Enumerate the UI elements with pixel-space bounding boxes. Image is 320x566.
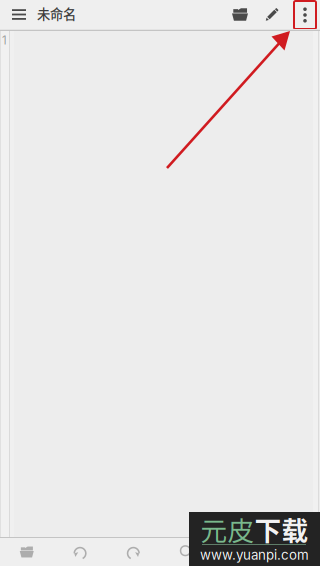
button[interactable]: Open file: [226, 0, 254, 29]
button[interactable]: Files: [0, 538, 53, 566]
staticText: 1: [2, 34, 7, 47]
button[interactable]: More options: [294, 1, 316, 29]
button[interactable]: Edit: [258, 0, 286, 29]
button[interactable]: Menu: [6, 0, 32, 29]
staticText: 下载: [254, 510, 308, 548]
button[interactable]: Redo: [107, 538, 160, 566]
button[interactable]: Search: [160, 538, 213, 566]
button[interactable]: Undo: [53, 538, 107, 566]
staticText: www.yuanpi.com: [200, 547, 309, 563]
button[interactable]: Keyboard: [213, 538, 267, 566]
staticText: 未命名: [37, 4, 76, 23]
staticText: 元皮: [200, 510, 254, 548]
button[interactable]: Settings: [267, 538, 320, 566]
